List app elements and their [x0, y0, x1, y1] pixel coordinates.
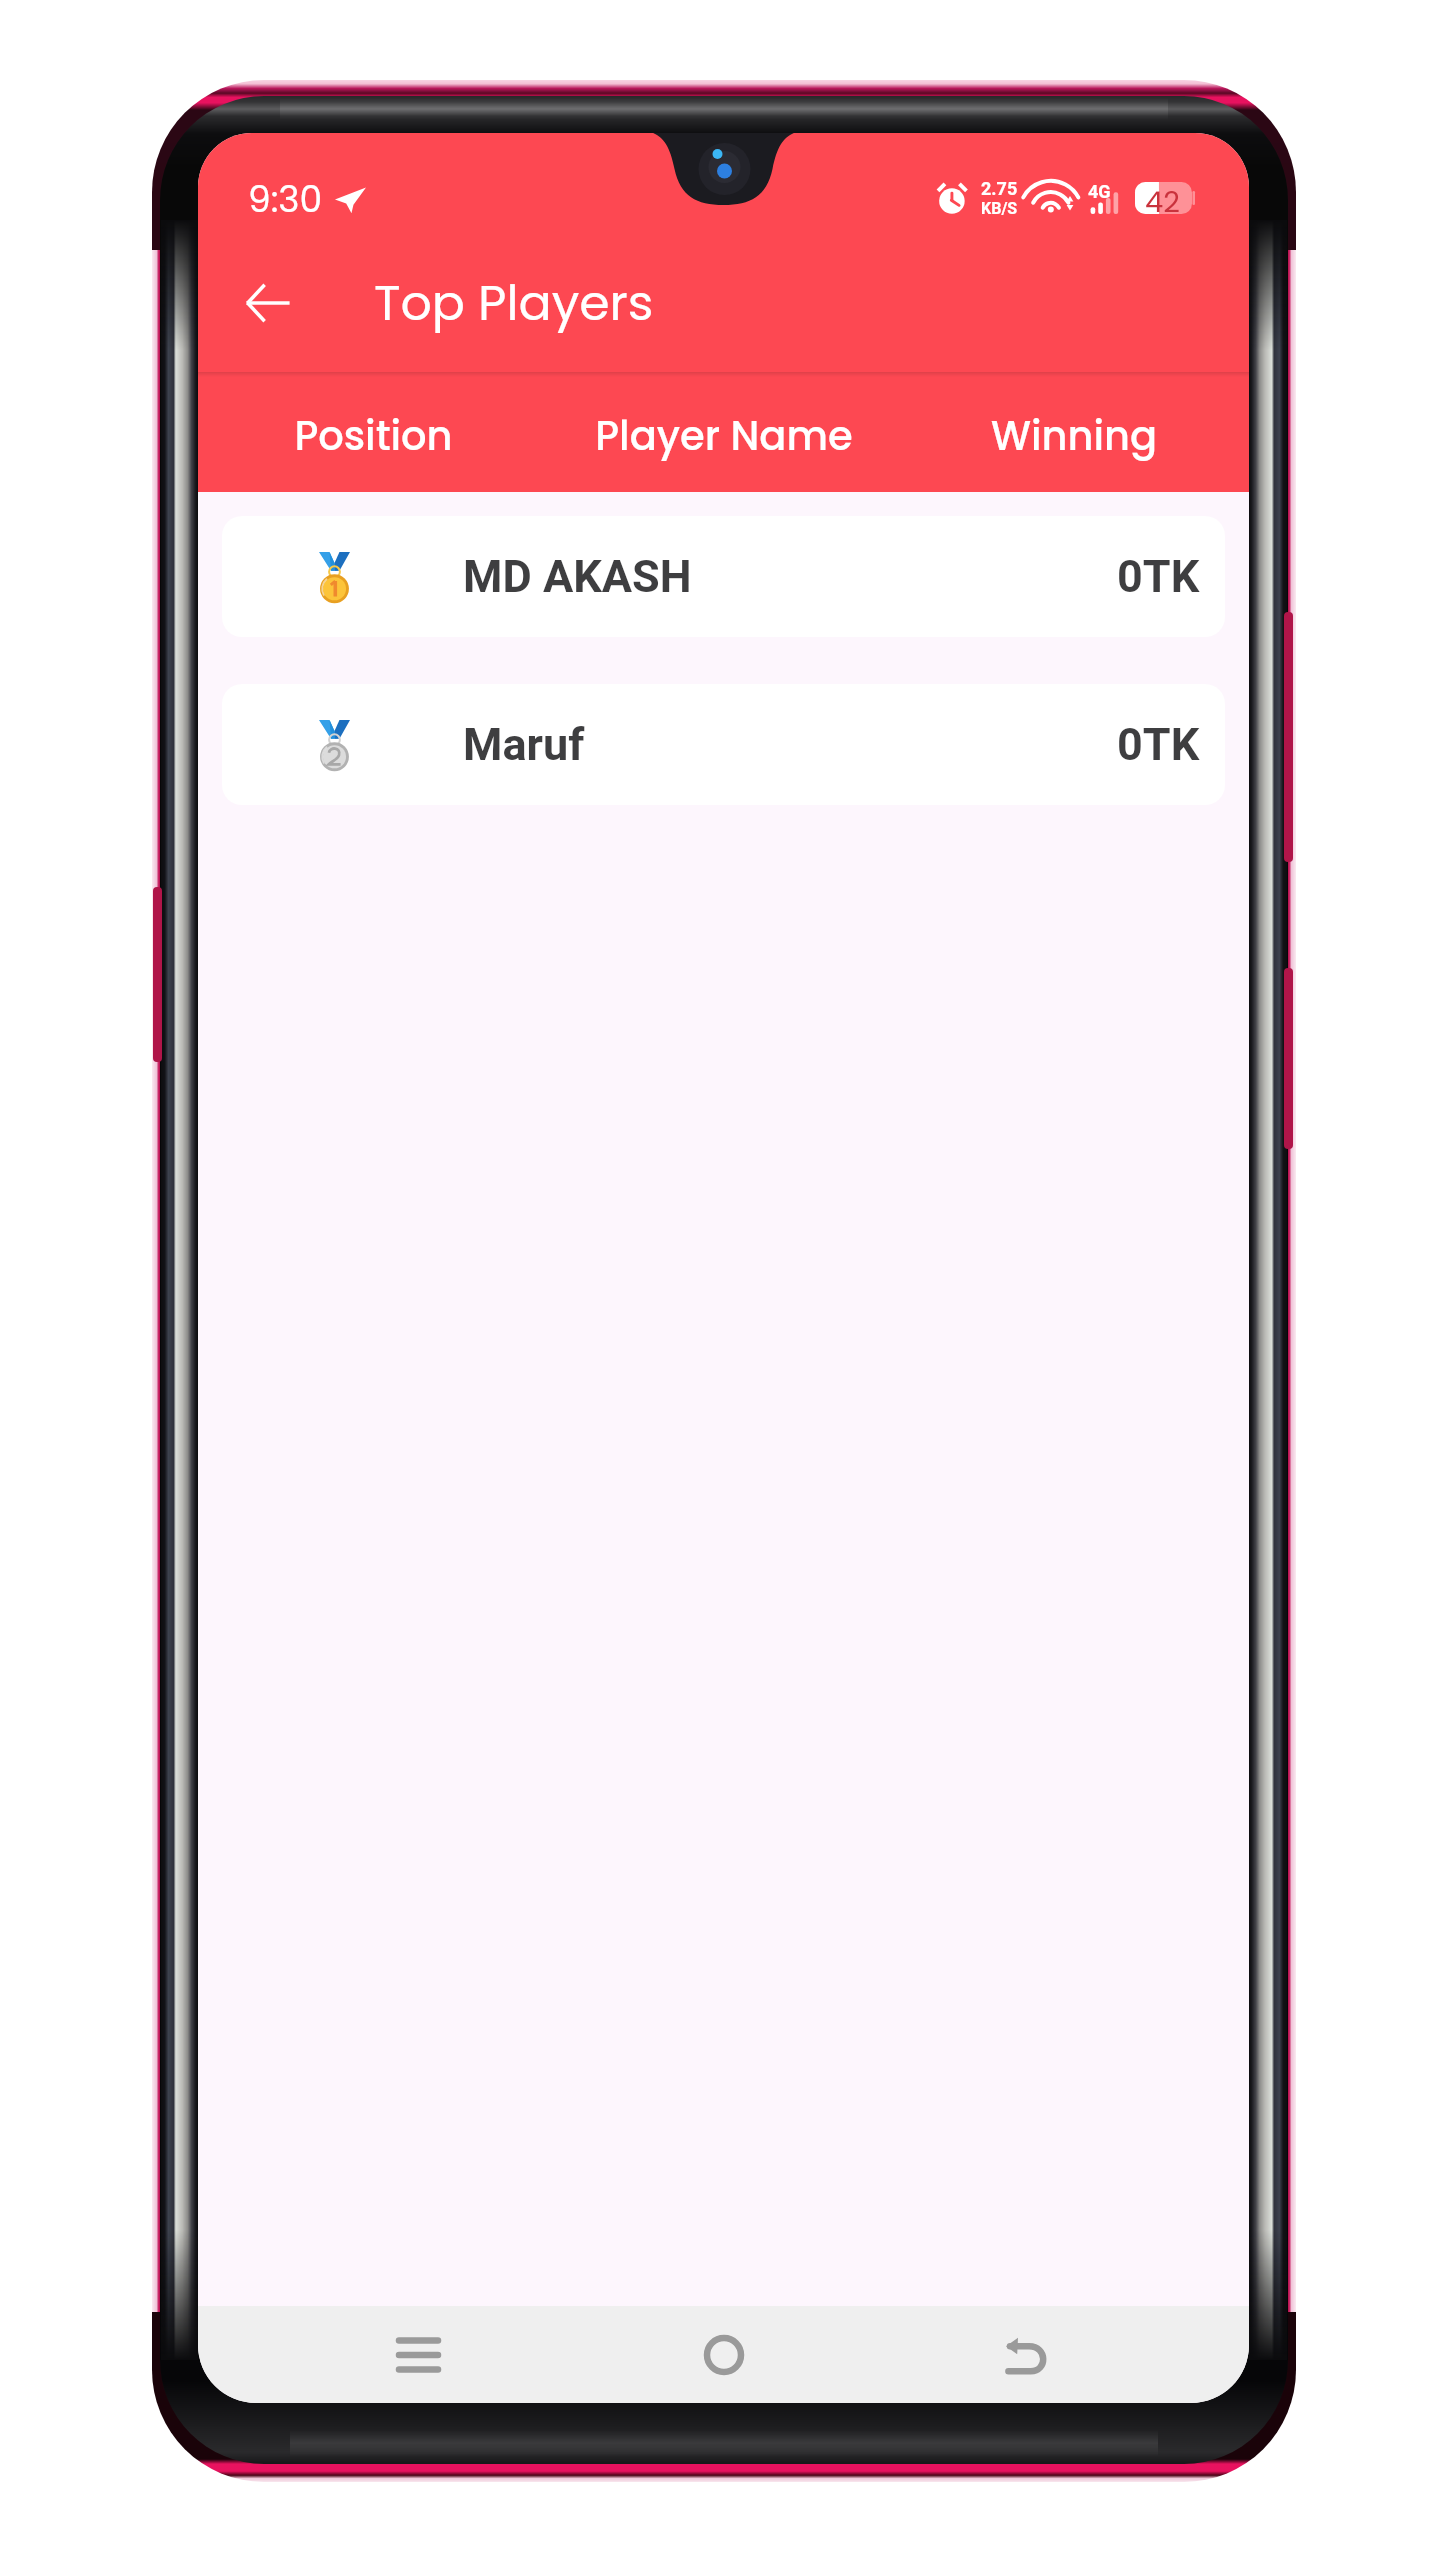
staticText: 4G: [1088, 181, 1111, 202]
staticText: Winning: [899, 408, 1249, 464]
button[interactable]: MD AKASH: [222, 516, 1225, 637]
button[interactable]: Maruf: [222, 684, 1225, 805]
staticText: Maruf: [463, 718, 585, 771]
button[interactable]: Home: [664, 2306, 784, 2403]
staticText: Position: [198, 408, 549, 464]
staticText: Top Players: [374, 269, 654, 338]
staticText: KB/S: [981, 199, 1018, 218]
staticText: MD AKASH: [463, 550, 692, 603]
staticText: 42: [1145, 182, 1180, 214]
staticText: 2.75: [981, 178, 1018, 199]
staticText: 0TK: [1117, 550, 1200, 603]
staticText: 9:30: [248, 174, 323, 224]
button[interactable]: Back: [225, 260, 311, 346]
staticText: 0TK: [1117, 718, 1200, 771]
button[interactable]: Recent apps: [358, 2306, 478, 2403]
button[interactable]: Back: [966, 2306, 1086, 2403]
staticText: Player Name: [549, 408, 899, 464]
